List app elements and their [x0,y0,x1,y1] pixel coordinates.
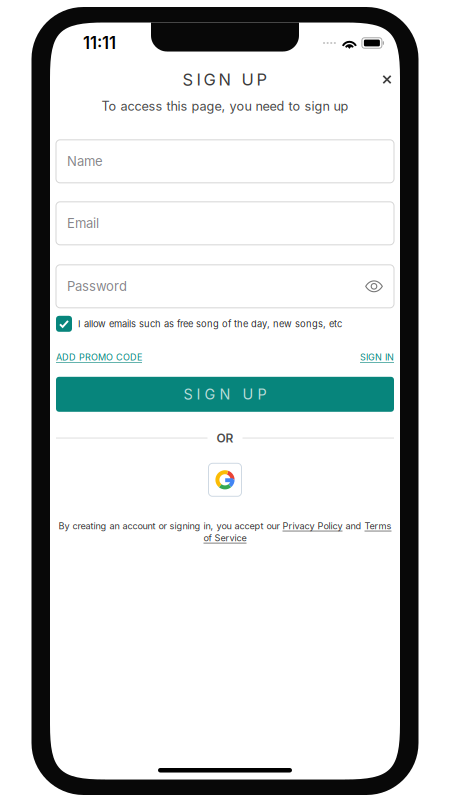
button[interactable]: Terms [364,520,391,531]
staticText: Privacy Policy [282,520,342,531]
button[interactable]: Sign up with Google [208,463,241,496]
staticText: and [342,520,364,531]
button[interactable]: ADD PROMO CODE [56,352,142,363]
staticText: I allow emails such as free song of the … [78,318,342,329]
button[interactable]: Privacy Policy [282,520,342,531]
staticText: Name [67,153,103,169]
staticText: By creating an account or signing in, yo… [58,520,282,531]
staticText: SIGN IN [360,352,394,363]
staticText: of Service [203,532,246,543]
button[interactable]: Close [380,68,394,90]
staticText: Terms [364,520,391,531]
staticText: 11:11 [83,33,116,53]
button[interactable]: Allow promotional emails [56,316,72,332]
button[interactable]: of Service [203,532,246,543]
staticText: To access this page, you need to sign up [101,98,348,114]
staticText: ADD PROMO CODE [56,352,142,363]
staticText: Password [67,278,127,294]
button[interactable]: S I G N U P [56,377,394,412]
staticText: Email [67,215,99,231]
staticText: S I G N U P [183,386,266,403]
staticText: SIGN UP [182,69,267,89]
staticText: OR [216,431,233,445]
button[interactable]: SIGN IN [360,352,394,363]
